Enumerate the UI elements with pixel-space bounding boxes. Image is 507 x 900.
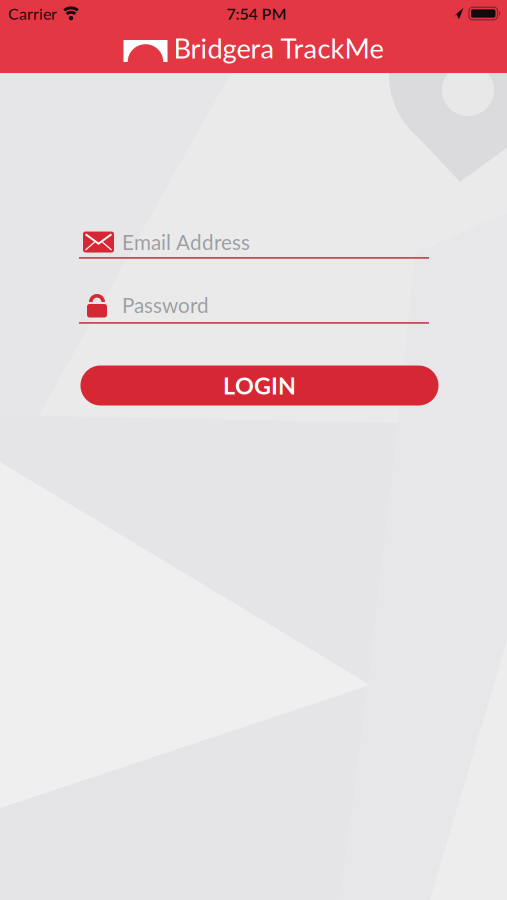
staticText: LOGIN xyxy=(223,371,296,399)
staticText: Carrier xyxy=(8,4,57,23)
staticText: 7:54 PM xyxy=(226,4,286,23)
staticText: Password xyxy=(122,293,209,317)
staticText: Email Address xyxy=(122,230,250,254)
button[interactable]: Email Address xyxy=(79,231,429,259)
button[interactable]: Password xyxy=(79,292,429,324)
button[interactable]: LOGIN xyxy=(80,365,438,405)
staticText: Bridgera TrackMe xyxy=(173,32,383,64)
